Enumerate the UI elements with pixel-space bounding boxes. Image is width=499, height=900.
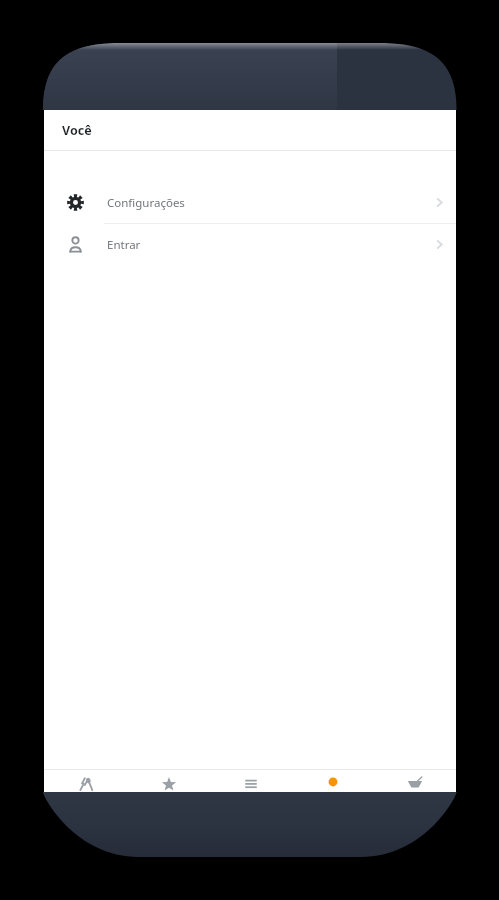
staticText: Você	[62, 122, 92, 139]
button[interactable]: Orders	[210, 770, 292, 792]
staticText: Entrar	[107, 237, 423, 253]
button[interactable]: You	[292, 770, 374, 792]
button[interactable]: Favorites	[127, 770, 210, 792]
staticText: Configurações	[107, 195, 423, 211]
button[interactable]: Restaurants	[44, 770, 127, 792]
button[interactable]: Entrar	[44, 224, 456, 265]
button[interactable]: Configurações	[44, 182, 456, 223]
button[interactable]: Cart	[374, 770, 456, 792]
